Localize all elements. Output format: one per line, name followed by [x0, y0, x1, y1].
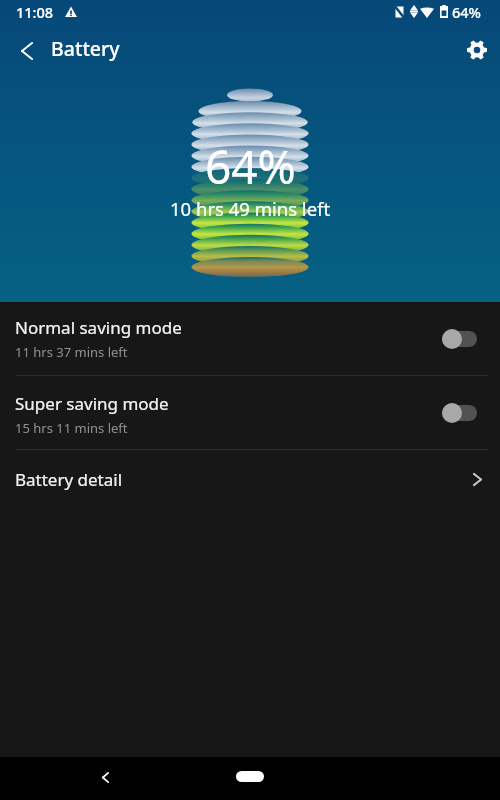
staticText: Battery	[51, 35, 120, 62]
staticText: 11 hrs 37 mins left	[15, 343, 128, 361]
staticText: 15 hrs 11 mins left	[15, 419, 128, 437]
staticText: 64%	[205, 135, 296, 198]
staticText: Battery detail	[15, 468, 473, 491]
staticText: 10 hrs 49 mins left	[170, 196, 331, 221]
staticText: Super saving mode	[15, 392, 169, 415]
button[interactable]: Settings	[455, 28, 499, 72]
button[interactable]: Back	[89, 761, 121, 793]
button[interactable]: Battery detail	[0, 450, 500, 512]
button[interactable]: Back	[5, 29, 48, 72]
staticText: Normal saving mode	[15, 316, 182, 339]
staticText: 11:08	[16, 2, 54, 22]
button[interactable]: Home	[236, 771, 264, 782]
staticText: 64%	[452, 2, 481, 22]
button[interactable]: Normal saving mode	[0, 302, 500, 375]
button[interactable]: Super saving mode	[0, 376, 500, 449]
